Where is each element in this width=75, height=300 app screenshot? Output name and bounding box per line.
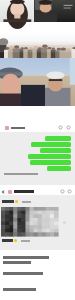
button[interactable]: Search [58,125,63,130]
button[interactable]: Back [0,188,75,195]
button[interactable] [40,148,71,153]
button[interactable]: More options [66,125,71,130]
button[interactable] [45,136,71,141]
button[interactable] [28,154,71,159]
other: Back [1,190,5,194]
button[interactable]: Search [0,123,75,132]
button[interactable] [47,166,71,171]
button[interactable] [31,142,71,147]
button[interactable]: Call [67,189,72,194]
button[interactable] [30,160,71,165]
button[interactable]: Search [60,189,65,194]
